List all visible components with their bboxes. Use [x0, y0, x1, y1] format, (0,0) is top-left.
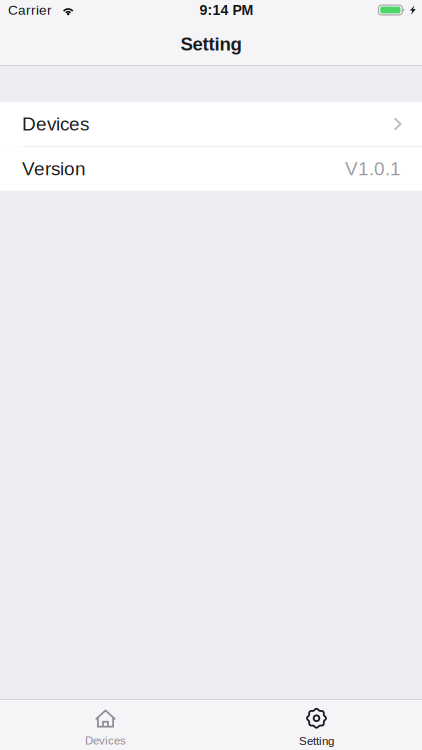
staticText: Setting: [180, 34, 241, 54]
staticText: Carrier: [8, 2, 52, 18]
staticText: Devices: [22, 113, 89, 135]
staticText: Version: [22, 158, 86, 179]
staticText: V1.0.1: [345, 158, 401, 179]
staticText: 9:14 PM: [199, 2, 253, 18]
button[interactable]: Devices: [0, 102, 422, 146]
staticText: Devices: [85, 734, 126, 747]
button[interactable]: Devices: [0, 700, 211, 750]
button[interactable]: Setting: [211, 700, 422, 750]
staticText: Setting: [299, 735, 334, 747]
